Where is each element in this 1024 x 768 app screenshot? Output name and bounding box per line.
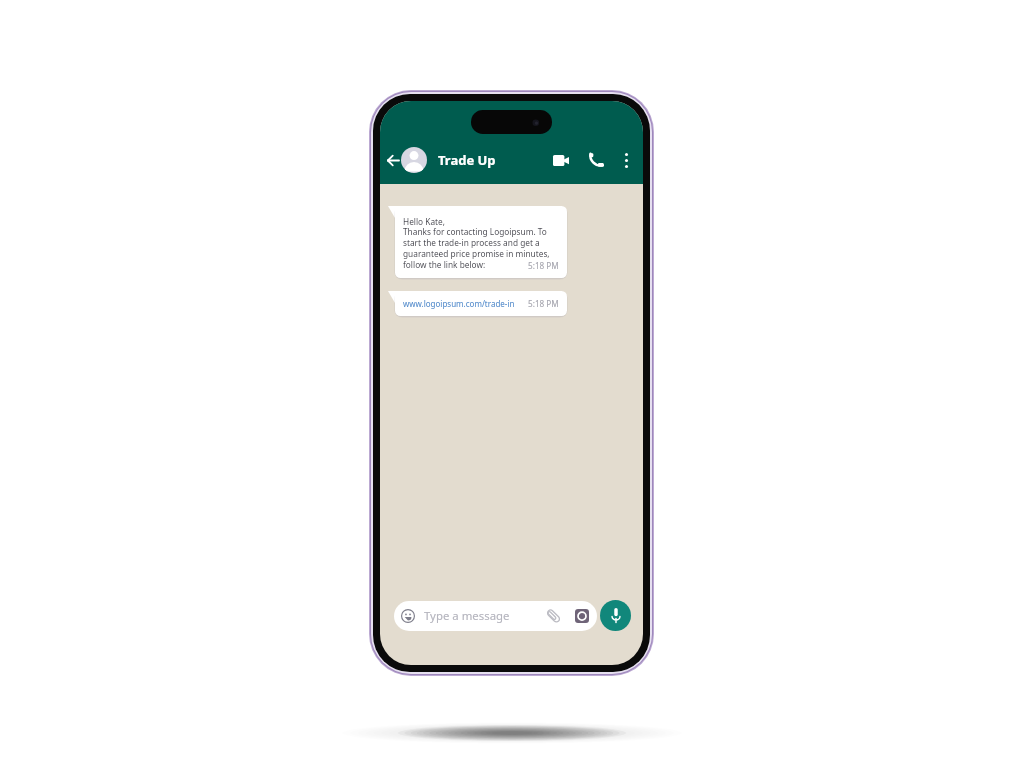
button[interactable]: Attach xyxy=(546,608,561,624)
staticText: www.logoipsum.com/trade-in xyxy=(403,298,515,309)
staticText: Trade Up xyxy=(438,151,496,169)
staticText: 5:18 PM xyxy=(528,298,559,309)
button[interactable]: More options xyxy=(624,149,628,171)
button[interactable]: Type a message xyxy=(394,601,597,631)
button[interactable]: Back xyxy=(387,151,399,169)
button[interactable]: Camera xyxy=(575,608,589,624)
staticText: Type a message xyxy=(424,608,510,624)
staticText: 5:18 PM xyxy=(528,260,559,271)
button[interactable]: www.logoipsum.com/trade-in xyxy=(395,291,567,316)
staticText: Hello Kate, Thanks for contacting Logoip… xyxy=(403,216,550,271)
button[interactable]: Voice call xyxy=(589,149,604,171)
button[interactable]: Record voice message xyxy=(600,600,631,631)
button[interactable]: Hello Kate, Thanks for contacting Logoip… xyxy=(395,206,567,278)
button[interactable]: Profile photo xyxy=(401,147,427,173)
button[interactable]: Video call xyxy=(553,149,569,171)
